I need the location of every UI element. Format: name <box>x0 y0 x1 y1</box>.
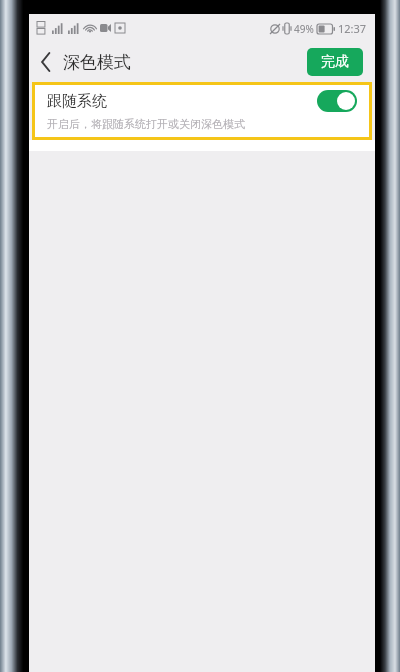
button[interactable]: 完成 <box>307 48 363 76</box>
staticText: 开启后，将跟随系统打开或关闭深色模式 <box>47 117 245 131</box>
button[interactable]: 跟随系统 <box>35 85 369 137</box>
button[interactable]: 跟随系统开关 <box>317 90 357 112</box>
staticText: 深色模式 <box>63 52 131 73</box>
staticText: 完成 <box>321 53 349 71</box>
staticText: 49% <box>294 22 314 36</box>
button[interactable]: 返回 <box>29 45 63 79</box>
staticText: 跟随系统 <box>47 92 107 111</box>
staticText: 12:37 <box>338 21 367 36</box>
